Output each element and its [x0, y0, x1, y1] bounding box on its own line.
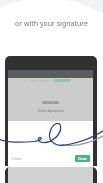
staticText: or with your signature: [0, 19, 103, 29]
button[interactable]: Clear: [8, 154, 26, 163]
staticText: AGREEMENT: [54, 79, 71, 83]
staticText: Device Agreement: [38, 109, 64, 113]
staticText: Clear: [12, 156, 22, 161]
staticText: Done: [78, 156, 87, 161]
staticText: SIGNATURE: [42, 101, 59, 105]
button[interactable]: Done: [75, 155, 90, 162]
staticText: please review the: [30, 79, 54, 83]
